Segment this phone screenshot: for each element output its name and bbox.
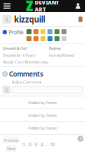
staticText: ART [35,6,46,13]
button[interactable]: 3 [33,142,38,147]
staticText: Female/Poland [48,52,73,58]
button[interactable]: Add a comment [12,86,82,93]
button[interactable]: Account [71,0,85,12]
button[interactable]: Llama badge [78,17,82,22]
staticText: Deviant Artist [2,46,26,51]
staticText: Hidden by Owner [27,100,57,105]
staticText: Needs Core Membership [2,59,47,64]
staticText: Profile [8,29,23,36]
button[interactable]: 1 [21,142,26,147]
button[interactable]: 2 [27,142,32,147]
staticText: DEVIANT [35,0,59,6]
staticText: 2 [29,142,31,147]
button[interactable]: 4 [39,142,44,147]
button[interactable]: Close [76,134,85,143]
staticText: ✕ [79,136,82,141]
staticText: Paulina [48,46,60,51]
staticText: Previous [3,137,18,143]
staticText: 10 [50,142,54,147]
staticText: … [45,142,48,147]
button[interactable]: Previous [2,137,20,152]
button[interactable]: Profile [2,29,23,35]
button[interactable]: DeviantArt home [26,0,59,12]
button[interactable]: 10 [50,142,54,147]
staticText: Deviant for 6 Years [2,52,35,58]
staticText: Hidden by Owner [27,125,57,131]
button[interactable]: Menu [0,0,14,12]
staticText: kizzquill [14,14,45,25]
staticText: 4 [41,142,43,147]
staticText: Hidden by Owner [27,112,57,118]
staticText: 3 [35,142,37,147]
staticText: 1 [23,142,25,147]
staticText: Add a Comment [12,79,41,85]
staticText: Comments [9,70,43,78]
staticText: Next [7,146,15,151]
